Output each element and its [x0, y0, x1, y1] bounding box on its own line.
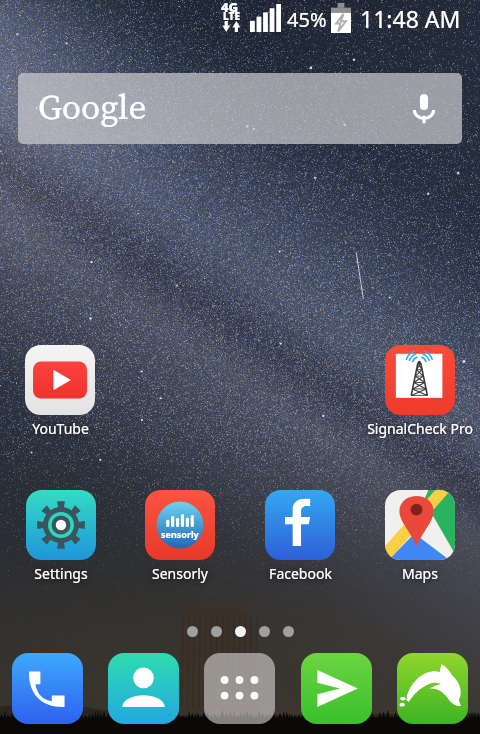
staticText: 4G: [221, 0, 239, 16]
staticText: YouTube: [32, 419, 89, 438]
button[interactable]: Messages: [301, 653, 372, 724]
staticText: Sensorly: [152, 564, 208, 583]
staticText: Settings: [34, 564, 88, 583]
staticText: 11:48 AM: [360, 3, 461, 34]
staticText: sensorly: [161, 528, 199, 540]
button[interactable]: Google: [18, 73, 462, 144]
button[interactable]: SignalCheck Pro: [360, 345, 480, 438]
button[interactable]: Maps: [360, 490, 480, 583]
button[interactable]: Phone: [12, 653, 83, 724]
button[interactable]: YouTube: [0, 345, 120, 438]
staticText: SignalCheck Pro: [367, 419, 473, 438]
button[interactable]: Facebook: [240, 490, 360, 583]
button[interactable]: Contacts: [108, 653, 179, 724]
button[interactable]: All apps: [204, 653, 275, 724]
staticText: 45%: [287, 6, 327, 33]
button[interactable]: Settings: [1, 490, 121, 583]
button[interactable]: Dolphin Browser: [397, 653, 468, 724]
button[interactable]: sensorly: [120, 490, 240, 583]
staticText: Maps: [402, 564, 438, 583]
other: Voice search: [412, 92, 436, 126]
staticText: Facebook: [269, 564, 332, 583]
staticText: Google: [38, 83, 147, 131]
staticText: LTE: [223, 9, 241, 23]
